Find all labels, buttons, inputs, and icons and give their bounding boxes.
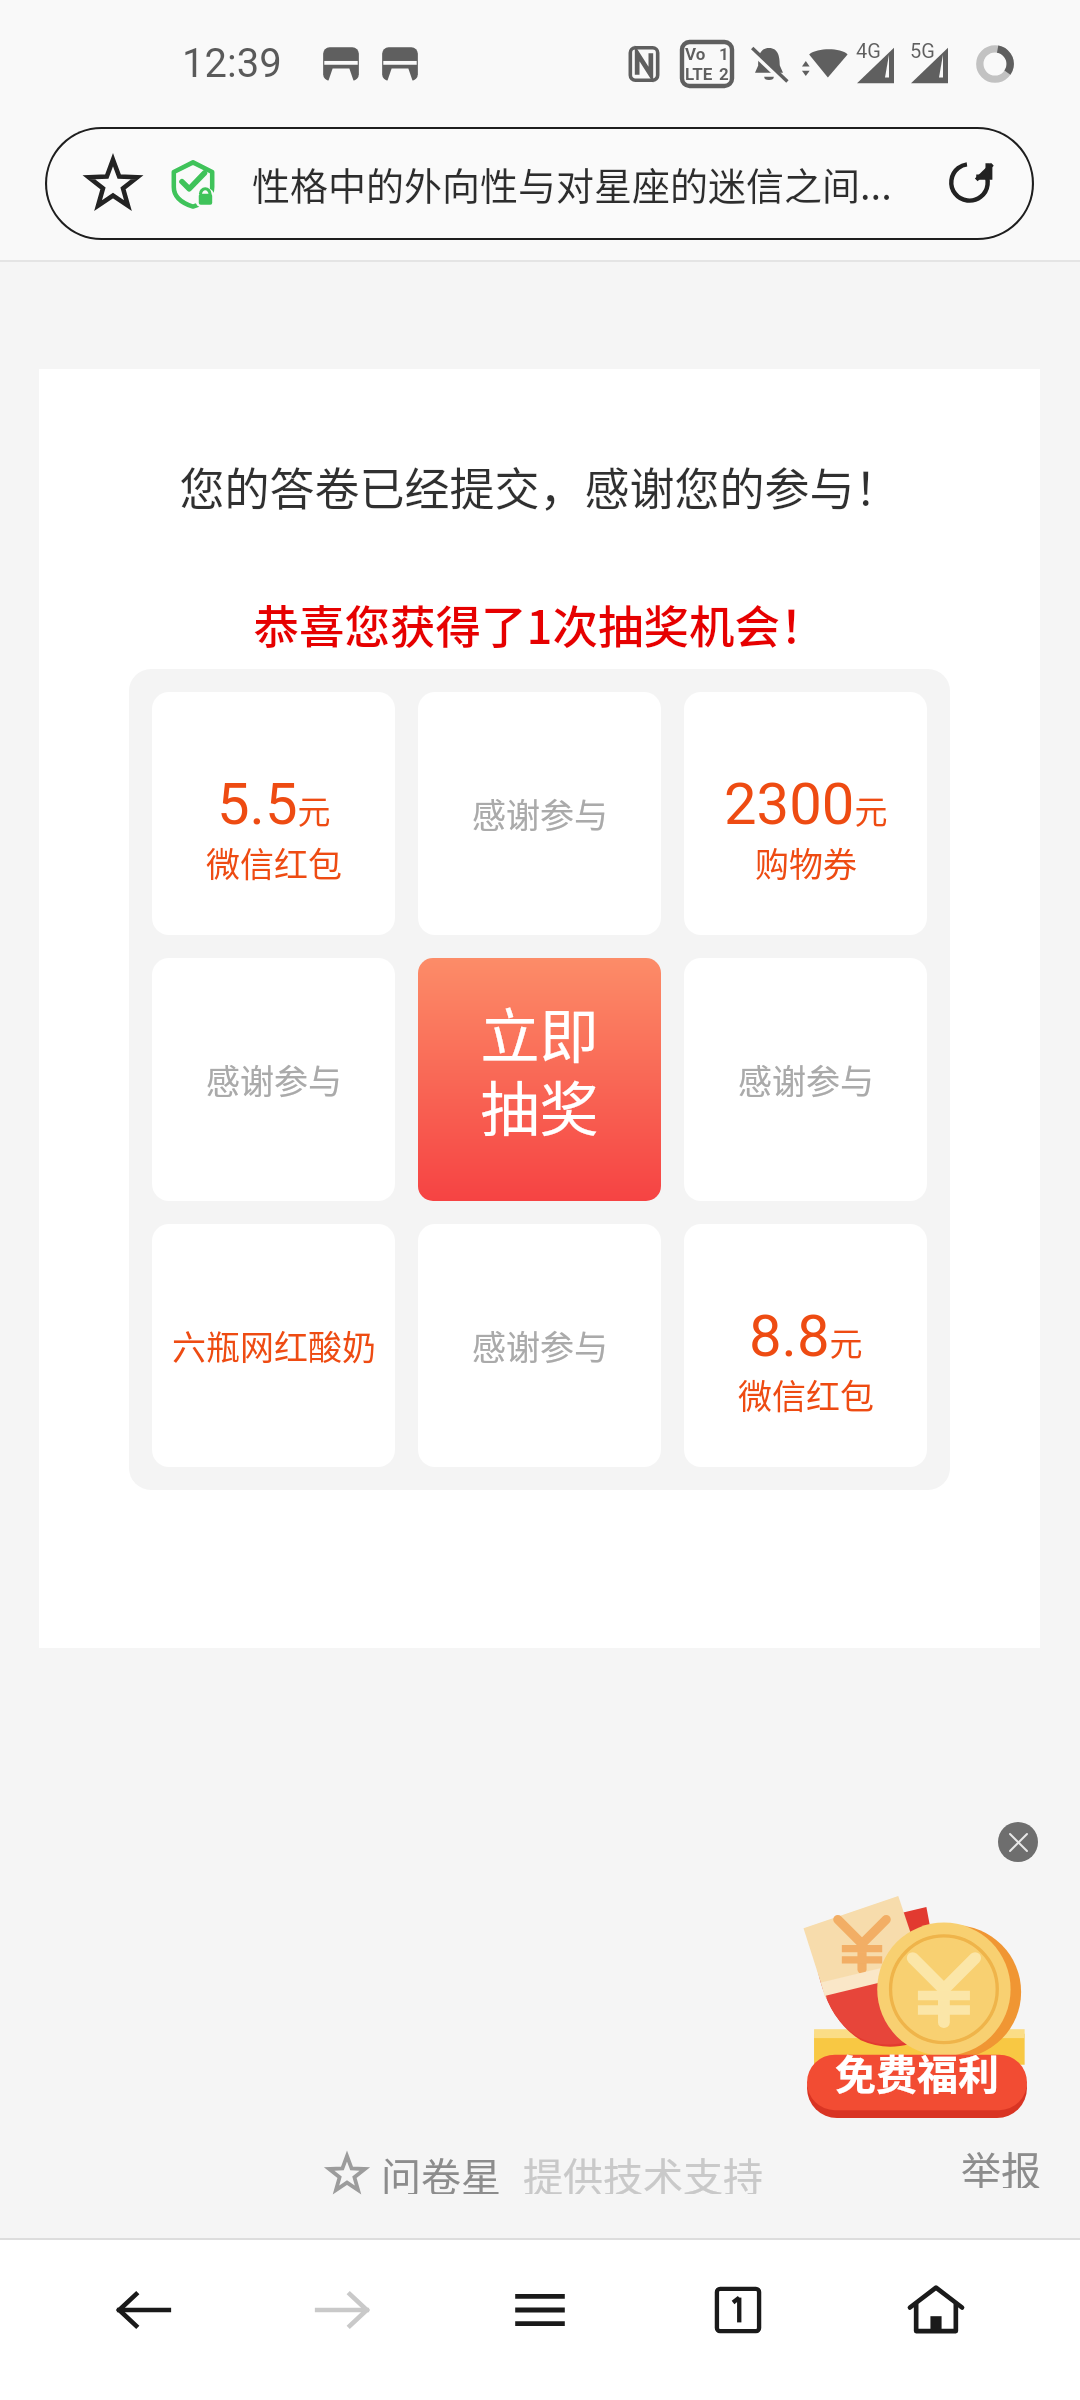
staticText: 4G [856, 39, 881, 62]
staticText: 免费福利 [835, 2042, 999, 2101]
button[interactable]: 立即 抽奖 [418, 958, 661, 1201]
button[interactable]: Site security info [169, 160, 217, 208]
staticText: 12:39 [182, 40, 282, 87]
button[interactable]: 感谢参与 [418, 692, 661, 935]
staticText: 2 [719, 64, 729, 84]
staticText: 感谢参与 [206, 1055, 342, 1104]
button[interactable]: 8.8元 [684, 1224, 927, 1467]
button[interactable]: 免费福利 [800, 1896, 1034, 2118]
staticText: 性格中的外向性与对星座的迷信之间... [252, 156, 934, 211]
button[interactable]: 感谢参与 [418, 1224, 661, 1467]
staticText: 恭喜您获得了1次抽奖机会！ [39, 591, 1040, 657]
staticText: 1 [719, 44, 729, 64]
button[interactable]: 5.5元 [152, 692, 395, 935]
button[interactable]: Forward [243, 2240, 441, 2400]
staticText: 感谢参与 [738, 1055, 874, 1104]
button[interactable]: Close ad [998, 1822, 1038, 1862]
button[interactable]: Bookmark [86, 157, 140, 211]
staticText: 立即 抽奖 [480, 990, 599, 1148]
button[interactable]: 感谢参与 [684, 958, 927, 1201]
staticText: 5G [910, 39, 935, 62]
staticText: 提供技术支持 [523, 2146, 763, 2194]
staticText: 感谢参与 [472, 789, 608, 838]
button[interactable]: 举报 [961, 2140, 1041, 2188]
staticText: 购物券 [755, 838, 857, 887]
button[interactable]: 六瓶网红酸奶 [152, 1224, 395, 1467]
button[interactable]: Bookmark [45, 127, 1034, 240]
button[interactable]: Menu [441, 2240, 639, 2400]
staticText: LTE [685, 64, 713, 84]
staticText: 问卷星 [381, 2146, 501, 2194]
staticText: 您的答卷已经提交，感谢您的参与！ [39, 454, 1040, 519]
button[interactable]: Tabs [639, 2240, 837, 2400]
staticText: 2300元 [724, 770, 888, 838]
button[interactable]: Reload page [944, 158, 996, 210]
button[interactable]: 问卷星 [327, 2146, 763, 2194]
staticText: 5.5元 [217, 770, 331, 838]
button[interactable]: 2300元 [684, 692, 927, 935]
staticText: 感谢参与 [472, 1321, 608, 1370]
staticText: Vo [685, 44, 706, 64]
button[interactable]: Back [45, 2240, 243, 2400]
button[interactable]: Home [837, 2240, 1035, 2400]
staticText: 8.8元 [749, 1302, 863, 1370]
staticText: 举报 [961, 2140, 1041, 2188]
button[interactable]: 感谢参与 [152, 958, 395, 1201]
staticText: 微信红包 [206, 838, 342, 887]
staticText: 六瓶网红酸奶 [172, 1321, 376, 1370]
staticText: 微信红包 [738, 1370, 874, 1419]
